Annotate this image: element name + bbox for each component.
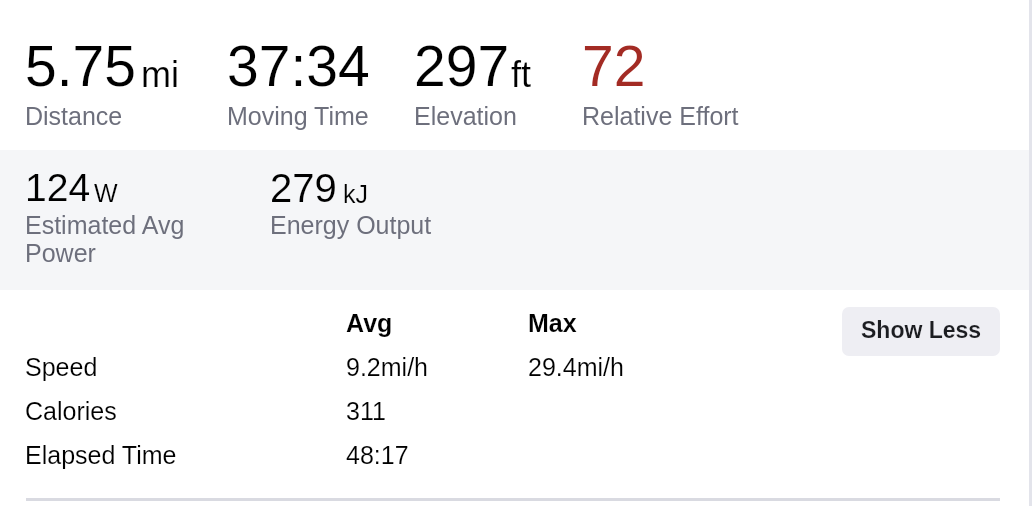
staticText: Relative Effort: [582, 102, 739, 130]
button[interactable]: [16, 344, 816, 388]
staticText: 29.4mi/h: [528, 353, 624, 381]
staticText: Elapsed Time: [25, 441, 177, 469]
staticText: Energy Output: [270, 211, 432, 239]
staticText: 72: [582, 34, 646, 98]
staticText: Elevation: [414, 102, 517, 130]
staticText: Moving Time: [227, 102, 369, 130]
button[interactable]: [408, 28, 590, 166]
staticText: Calories: [25, 397, 117, 425]
button[interactable]: [16, 432, 816, 476]
staticText: 37:34: [227, 34, 370, 98]
button[interactable]: [221, 28, 393, 166]
staticText: W: [94, 179, 118, 207]
button[interactable]: Show Less: [842, 307, 1000, 356]
staticText: ft: [511, 54, 532, 94]
staticText: Speed: [25, 353, 98, 381]
button[interactable]: [16, 388, 816, 432]
staticText: 124: [25, 166, 91, 210]
staticText: 279: [270, 166, 337, 211]
staticText: Max: [528, 309, 577, 337]
staticText: mi: [141, 54, 179, 94]
button[interactable]: [264, 160, 446, 275]
staticText: 5.75: [25, 34, 136, 98]
staticText: kJ: [343, 180, 368, 208]
staticText: Show Less: [861, 317, 982, 343]
button[interactable]: [576, 28, 763, 166]
button[interactable]: [19, 28, 201, 166]
staticText: Distance: [25, 102, 123, 130]
button[interactable]: [19, 160, 216, 275]
staticText: 48:17: [346, 441, 409, 469]
staticText: Estimated Avg Power: [25, 211, 210, 268]
staticText: 311: [346, 397, 386, 425]
staticText: 9.2mi/h: [346, 353, 428, 381]
staticText: 297: [414, 34, 510, 98]
staticText: Avg: [346, 309, 393, 337]
